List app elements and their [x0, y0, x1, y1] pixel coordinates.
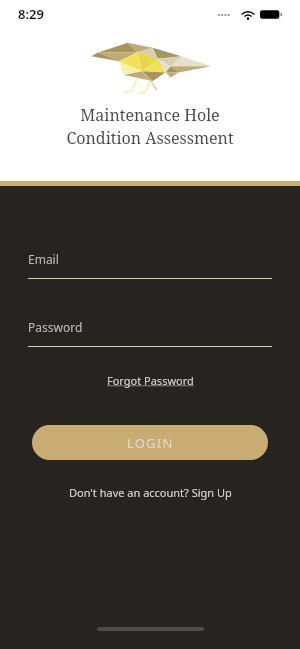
staticText: Forgot Password — [107, 373, 194, 388]
staticText: Password — [28, 319, 83, 335]
staticText: Email — [28, 251, 59, 267]
staticText: Don't have an account? Sign Up — [69, 485, 232, 500]
staticText: 8:29 — [18, 5, 44, 23]
button[interactable]: Email — [28, 251, 272, 279]
button[interactable]: LOGIN — [32, 425, 268, 460]
button[interactable]: Don't have an account? Sign Up — [63, 482, 238, 503]
staticText: LOGIN — [127, 434, 174, 452]
staticText: Condition Assessment — [66, 127, 234, 149]
other: App logo — [85, 34, 215, 96]
button[interactable]: Password — [28, 319, 272, 347]
button[interactable]: Forgot Password — [101, 370, 200, 391]
staticText: Maintenance Hole — [80, 104, 220, 126]
